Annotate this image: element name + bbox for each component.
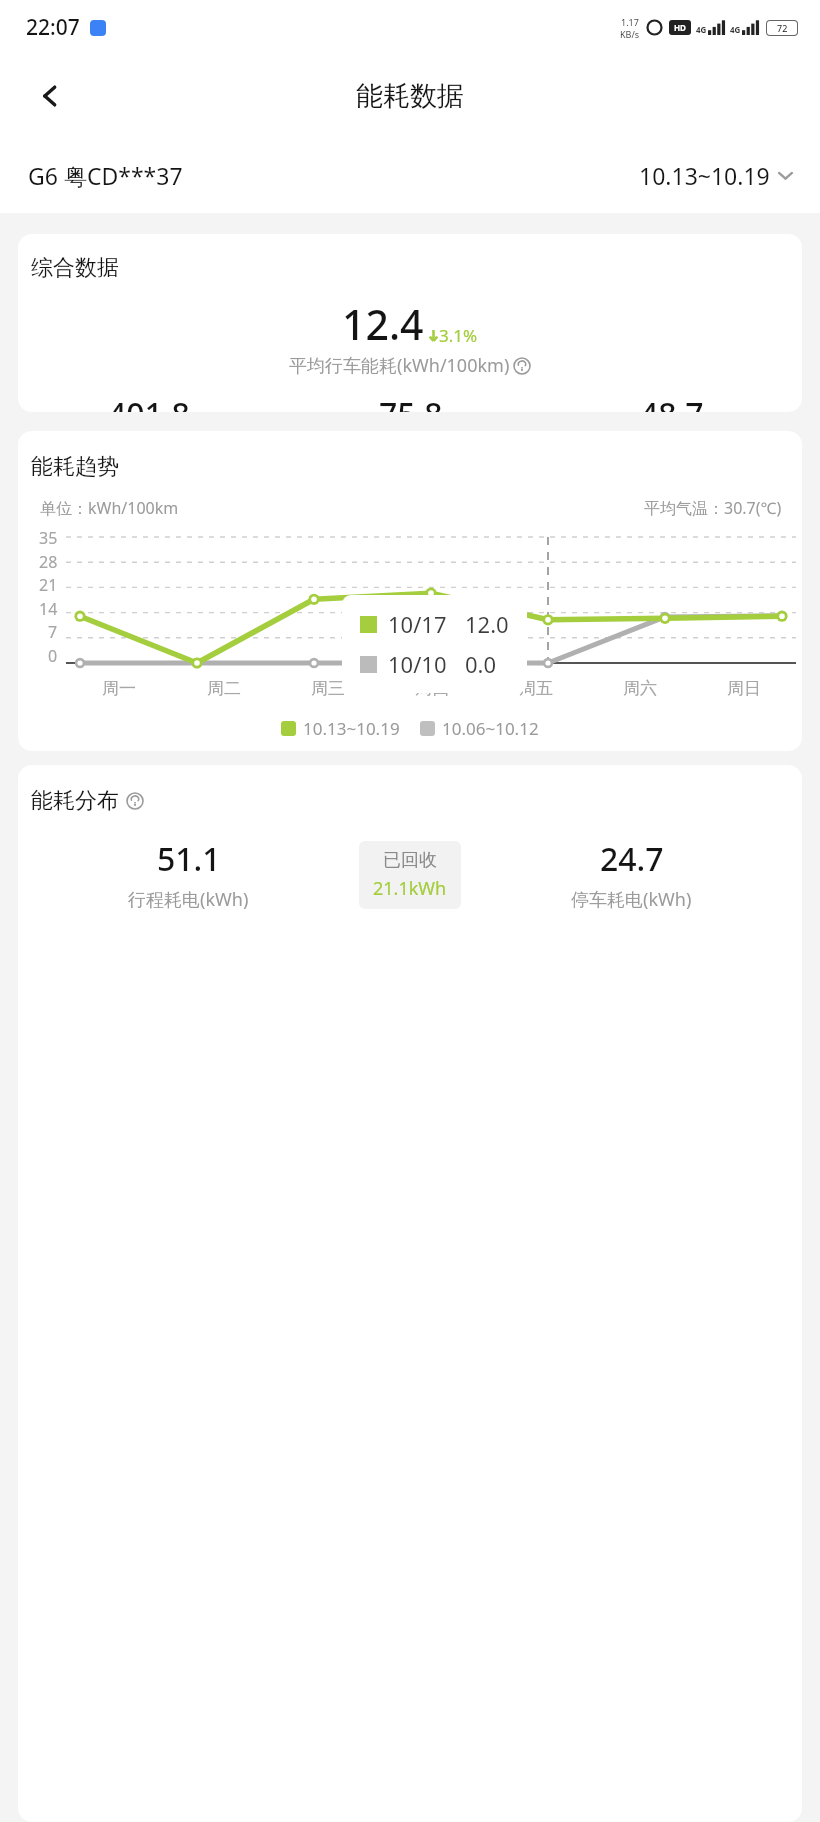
staticText: 3.1% bbox=[439, 324, 478, 347]
staticText: 能耗数据 bbox=[356, 79, 464, 113]
button[interactable]: 48.7 bbox=[541, 392, 802, 412]
staticText: G6 粤CD***37 bbox=[28, 160, 183, 191]
staticText: 48.7 bbox=[640, 392, 704, 412]
staticText: 已回收 bbox=[383, 849, 437, 872]
staticText: 周四 bbox=[415, 678, 449, 699]
staticText: 10.06~10.12 bbox=[442, 717, 539, 740]
staticText: 12.0 bbox=[465, 609, 509, 639]
staticText: 能耗趋势 bbox=[31, 453, 119, 481]
staticText: 周日 bbox=[727, 678, 761, 699]
staticText: 周二 bbox=[207, 678, 241, 699]
staticText: 12.4 bbox=[342, 296, 424, 352]
staticText: HD bbox=[674, 22, 686, 33]
staticText: 周六 bbox=[623, 678, 657, 699]
staticText: 1.17 bbox=[621, 16, 639, 28]
staticText: 周一 bbox=[102, 678, 136, 699]
staticText: 0.0 bbox=[465, 649, 497, 679]
button[interactable]: 10.13~10.19 bbox=[639, 160, 794, 191]
staticText: 10/17 bbox=[388, 609, 447, 639]
staticText: KB/s bbox=[620, 28, 640, 40]
button[interactable]: 51.1 bbox=[18, 837, 359, 912]
staticText: 平均行车能耗(kWh/100km) bbox=[289, 353, 510, 378]
staticText: 10/10 bbox=[388, 649, 447, 679]
staticText: 22:07 bbox=[26, 13, 80, 42]
staticText: 401.8 bbox=[108, 392, 190, 412]
staticText: 75.8 bbox=[379, 392, 443, 412]
staticText: 7 bbox=[48, 621, 58, 643]
staticText: 能耗分布 bbox=[31, 787, 119, 815]
staticText: 周五 bbox=[519, 678, 553, 699]
staticText: 14 bbox=[39, 598, 58, 620]
button[interactable]: 75.8 bbox=[280, 392, 541, 412]
staticText: 平均气温：30.7(℃) bbox=[644, 497, 782, 519]
staticText: 单位：kWh/100km bbox=[40, 497, 179, 519]
staticText: 21.1kWh bbox=[373, 876, 447, 901]
button[interactable]: Back bbox=[26, 72, 74, 120]
staticText: 10.13~10.19 bbox=[303, 717, 400, 740]
staticText: 4G bbox=[730, 24, 741, 35]
staticText: 24.7 bbox=[600, 837, 664, 881]
staticText: 停车耗电(kWh) bbox=[571, 887, 692, 912]
staticText: 28 bbox=[39, 551, 58, 573]
button[interactable]: 401.8 bbox=[18, 392, 280, 412]
staticText: 0 bbox=[48, 645, 58, 667]
staticText: 21 bbox=[39, 574, 58, 596]
button[interactable]: 24.7 bbox=[461, 837, 802, 912]
staticText: 35 bbox=[39, 527, 58, 549]
staticText: 综合数据 bbox=[31, 254, 119, 282]
staticText: 4G bbox=[696, 24, 707, 35]
staticText: 72 bbox=[777, 22, 788, 34]
staticText: 51.1 bbox=[157, 837, 221, 881]
staticText: 10.13~10.19 bbox=[639, 160, 770, 191]
staticText: 周三 bbox=[311, 678, 345, 699]
staticText: 行程耗电(kWh) bbox=[128, 887, 249, 912]
